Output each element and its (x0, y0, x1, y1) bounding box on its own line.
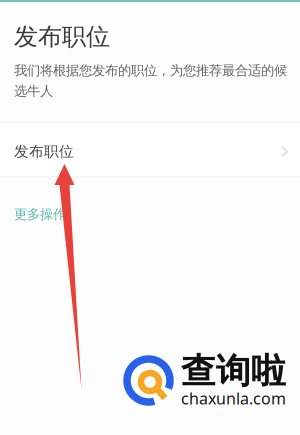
staticText: chaxunla.com (181, 388, 286, 409)
button[interactable]: 更多操作 (0, 206, 66, 223)
button[interactable]: 发布职位 (0, 123, 300, 176)
staticText: 发布职位 (14, 22, 110, 51)
staticText: 我们将根据您发布的职位，为您推荐最合适的候选牛人 (14, 62, 287, 99)
staticText: 更多操作 (14, 206, 66, 223)
staticText: 发布职位 (14, 143, 74, 161)
staticText: 查询啦 (181, 350, 286, 393)
